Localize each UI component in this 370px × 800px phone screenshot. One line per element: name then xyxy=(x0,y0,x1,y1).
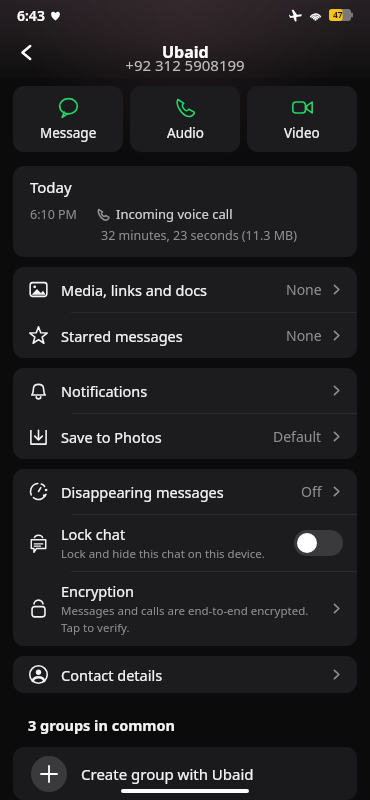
staticText: 47 xyxy=(333,9,343,21)
staticText: Contact details xyxy=(61,665,163,685)
staticText: Notifications xyxy=(61,381,148,401)
staticText: Audio xyxy=(167,124,204,142)
button[interactable]: Audio xyxy=(130,86,240,152)
staticText: Video xyxy=(284,124,320,142)
staticText: 32 minutes, 23 seconds (11.3 MB) xyxy=(101,227,297,244)
button[interactable]: Back xyxy=(6,32,46,72)
staticText: 6:10 PM xyxy=(30,206,77,223)
button[interactable]: Lock chat toggle xyxy=(294,530,343,556)
staticText: 6:43 xyxy=(17,6,45,25)
button[interactable]: Today xyxy=(13,166,357,257)
staticText: Starred messages xyxy=(61,326,183,346)
staticText: Lock and hide this chat on this device. xyxy=(61,546,265,562)
staticText: Message xyxy=(40,124,97,142)
button[interactable]: Disappearing messages xyxy=(13,469,357,514)
staticText: +92 312 5908199 xyxy=(125,55,245,75)
staticText: None xyxy=(286,326,322,345)
staticText: 3 groups in common xyxy=(28,715,175,735)
button[interactable]: Encryption xyxy=(13,572,357,646)
button[interactable]: Starred messages xyxy=(13,313,357,358)
button[interactable]: Create group with Ubaid xyxy=(13,747,357,800)
staticText: Encryption xyxy=(61,581,134,601)
button[interactable]: Save to Photos xyxy=(13,414,357,459)
staticText: Ubaid xyxy=(162,41,209,63)
staticText: Create group with Ubaid xyxy=(81,764,254,784)
staticText: Media, links and docs xyxy=(61,280,208,300)
staticText: Messages and calls are end-to-end encryp… xyxy=(61,603,322,635)
button[interactable]: Media, links and docs xyxy=(13,267,357,312)
staticText: Lock chat xyxy=(61,524,126,544)
button[interactable]: Lock chat xyxy=(13,515,357,571)
staticText: Save to Photos xyxy=(61,427,162,447)
button[interactable]: Message xyxy=(13,86,123,152)
staticText: Default xyxy=(273,427,322,446)
button[interactable]: Contact details xyxy=(13,656,357,693)
button[interactable]: Video xyxy=(247,86,357,152)
staticText: None xyxy=(286,280,322,299)
staticText: Disappearing messages xyxy=(61,482,224,502)
button[interactable]: Notifications xyxy=(13,368,357,413)
staticText: Today xyxy=(30,177,72,197)
staticText: Off xyxy=(301,482,322,501)
staticText: Incoming voice call xyxy=(116,205,233,223)
